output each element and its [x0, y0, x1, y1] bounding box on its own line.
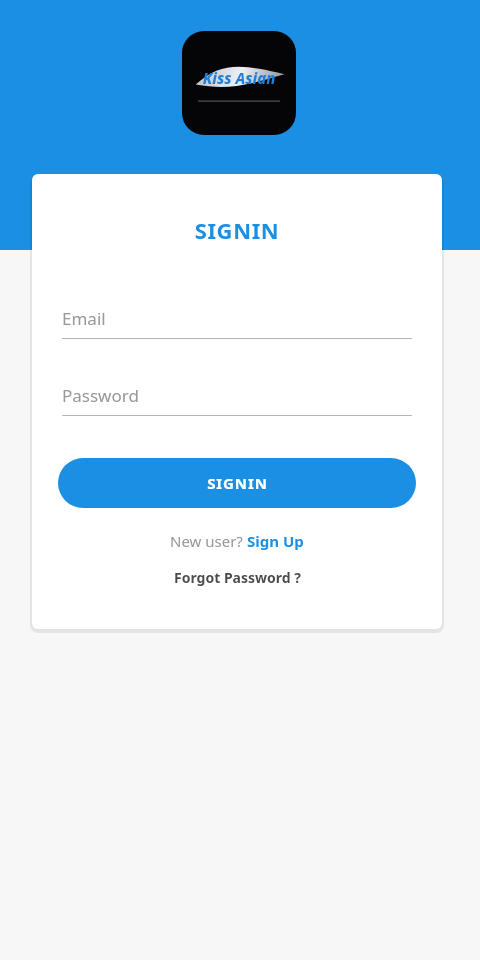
staticText: Forgot Password ?: [174, 568, 301, 587]
other: Kiss Asian logo: [182, 31, 296, 135]
staticText: Sign Up: [247, 531, 304, 551]
button[interactable]: Sign Up: [247, 531, 304, 551]
staticText: Kiss Asian: [182, 68, 296, 88]
button[interactable]: SIGNIN: [58, 458, 416, 508]
staticText: SIGNIN: [207, 473, 268, 493]
staticText: New user?: [170, 531, 247, 551]
button[interactable]: Email: [62, 307, 412, 339]
staticText: Email: [62, 307, 106, 330]
button[interactable]: Password: [62, 384, 412, 416]
staticText: SIGNIN: [32, 215, 442, 245]
staticText: Password: [62, 384, 139, 407]
button[interactable]: Forgot Password ?: [32, 568, 442, 587]
